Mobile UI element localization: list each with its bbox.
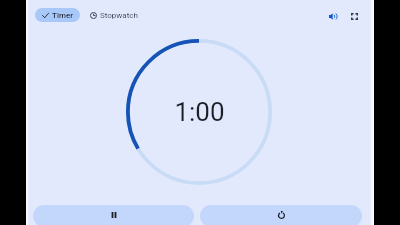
staticText: Stopwatch bbox=[100, 11, 138, 20]
staticText: 1:00 bbox=[174, 97, 225, 127]
button[interactable]: Sound bbox=[324, 7, 342, 25]
button[interactable]: Stopwatch bbox=[83, 8, 145, 22]
button[interactable]: Pause bbox=[33, 205, 194, 225]
staticText: Timer bbox=[52, 11, 73, 20]
button[interactable]: Fullscreen bbox=[345, 7, 363, 25]
button[interactable]: Reset bbox=[200, 205, 362, 225]
button[interactable]: Timer bbox=[35, 8, 80, 22]
